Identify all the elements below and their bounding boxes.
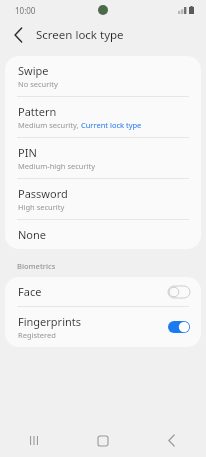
staticText: Biometrics — [17, 261, 56, 271]
staticText: Swipe — [18, 63, 49, 78]
button[interactable]: Back — [137, 424, 206, 457]
staticText: Fingerprints — [18, 314, 82, 329]
staticText: Password — [18, 186, 68, 201]
button[interactable]: Password — [5, 179, 201, 219]
staticText: Face — [18, 284, 42, 299]
button[interactable]: Pattern — [5, 97, 201, 137]
staticText: No security — [18, 79, 58, 89]
button[interactable]: Home — [68, 424, 137, 457]
button[interactable]: Face — [5, 277, 201, 306]
button[interactable]: None — [5, 220, 201, 249]
staticText: 10:00 — [15, 5, 36, 16]
staticText: Medium-high security — [18, 161, 96, 171]
staticText: None — [18, 227, 47, 242]
staticText: Medium security, — [18, 120, 81, 130]
button[interactable]: Off — [168, 286, 190, 298]
button[interactable]: On — [168, 321, 190, 333]
button[interactable]: Back — [6, 23, 30, 47]
button[interactable]: PIN — [5, 138, 201, 178]
staticText: Pattern — [18, 104, 57, 119]
staticText: Screen lock type — [36, 27, 124, 43]
button[interactable]: Fingerprints — [5, 307, 201, 347]
staticText: Registered — [18, 330, 56, 340]
staticText: PIN — [18, 145, 37, 160]
button[interactable]: Recents — [0, 424, 68, 457]
button[interactable]: Swipe — [5, 56, 201, 96]
staticText: High security — [18, 202, 65, 212]
button[interactable]: Current lock type — [81, 120, 142, 130]
